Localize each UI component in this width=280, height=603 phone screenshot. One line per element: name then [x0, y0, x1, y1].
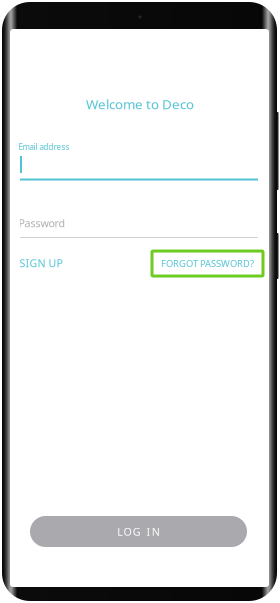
staticText: Password	[18, 216, 65, 230]
staticText: SIGN UP	[19, 256, 62, 270]
button[interactable]: FORGOT PASSWORD?	[152, 251, 263, 276]
button[interactable]: LOG IN	[30, 516, 247, 547]
staticText: Email address	[18, 142, 69, 152]
staticText: FORGOT PASSWORD?	[161, 257, 254, 270]
staticText: Welcome to Deco	[86, 95, 194, 113]
button[interactable]: SIGN UP	[16, 251, 65, 275]
staticText: LOG IN	[117, 524, 160, 539]
